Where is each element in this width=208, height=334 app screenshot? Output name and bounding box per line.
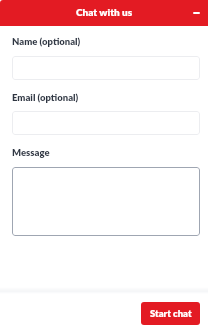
button[interactable]: Minimize chat [188,5,204,21]
staticText: Chat with us [76,6,133,18]
staticText: Message [12,147,50,158]
staticText: Email (optional) [12,92,79,103]
staticText: Start chat [150,308,192,319]
staticText: Name (optional) [12,36,81,47]
button[interactable]: Message [12,167,200,236]
button[interactable]: Start chat [141,302,200,325]
button[interactable]: Email, optional [12,111,200,135]
button[interactable]: Name, optional [12,56,200,80]
